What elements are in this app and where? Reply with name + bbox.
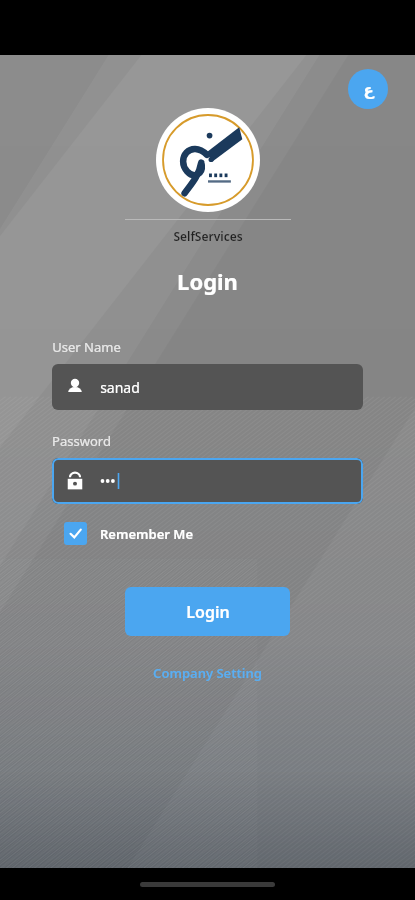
button[interactable]: Login [125,587,290,636]
button[interactable]: Company Setting [147,658,268,688]
staticText: SelfServices [173,228,243,244]
staticText: Login [186,601,230,623]
staticText: sanad [100,378,140,397]
staticText: Password [52,432,111,450]
staticText: User Name [52,338,121,356]
staticText: ع [363,81,374,98]
staticText: Remember Me [100,525,193,543]
button[interactable]: sanad [52,364,363,410]
button[interactable] [52,458,363,504]
button[interactable]: Remember Me [64,522,193,545]
button[interactable]: Change language [348,69,388,109]
staticText: Login [177,266,238,296]
staticText: Company Setting [153,664,262,682]
